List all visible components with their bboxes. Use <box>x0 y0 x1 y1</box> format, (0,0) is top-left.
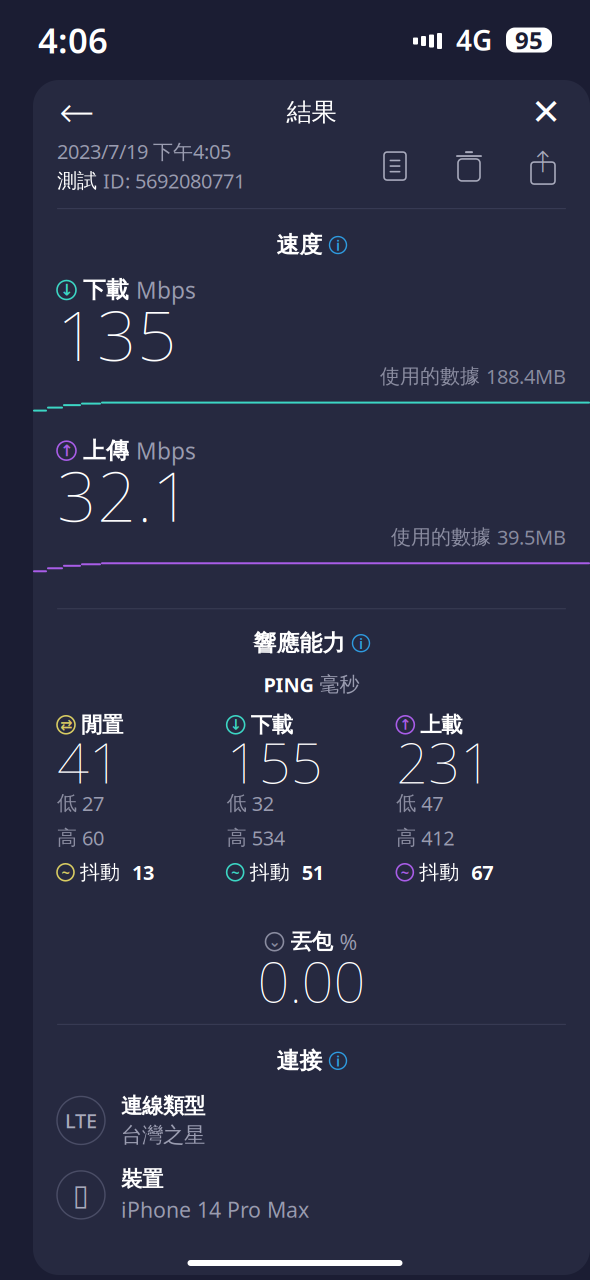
staticText: 32.1 <box>57 449 192 541</box>
button[interactable]: Delete <box>446 143 492 189</box>
button[interactable]: Close <box>524 90 568 134</box>
staticText: 27 <box>82 790 104 816</box>
staticText: 連接 <box>276 1047 322 1075</box>
staticText: ↑ <box>399 716 411 733</box>
staticText: 上載 <box>420 712 462 738</box>
staticText: 高 <box>57 825 77 850</box>
staticText: 速度 <box>276 231 322 259</box>
staticText: ↓ <box>60 281 73 299</box>
button[interactable]: Back <box>55 90 99 134</box>
staticText: ✕ <box>531 92 561 132</box>
staticText: ~ <box>61 862 69 882</box>
staticText: 高 <box>227 825 247 850</box>
staticText: 閒置 <box>81 712 123 738</box>
button[interactable]: Details <box>372 143 418 189</box>
staticText: 412 <box>421 824 454 851</box>
staticText: 4:06 <box>38 17 108 63</box>
staticText: 抖動 <box>419 860 465 885</box>
staticText: Mbps <box>136 436 196 466</box>
staticText: 231 <box>396 725 492 799</box>
staticText: ⇄ <box>60 716 72 733</box>
staticText: 60 <box>82 824 104 851</box>
staticText: 0.00 <box>257 944 365 1018</box>
staticText: 534 <box>252 824 285 851</box>
staticText: 135 <box>57 288 177 380</box>
staticText: 響應能力 <box>253 629 345 657</box>
staticText: ▯ <box>73 1178 89 1212</box>
staticText: 4G <box>456 21 492 59</box>
staticText: LTE <box>65 1107 97 1134</box>
staticText: iPhone 14 Pro Max <box>121 1195 309 1224</box>
staticText: 低 <box>396 791 416 815</box>
staticText: 32 <box>252 790 274 816</box>
staticText: ID: 5692080771 <box>103 168 245 194</box>
staticText: 丟包 <box>290 929 332 955</box>
staticText: ⌄ <box>268 933 280 950</box>
staticText: 測試 <box>57 169 103 193</box>
staticText: PING <box>263 671 313 698</box>
staticText: 13 <box>132 859 154 886</box>
staticText: 高 <box>396 825 416 850</box>
staticText: ↑ <box>530 145 555 179</box>
staticText: % <box>339 928 357 956</box>
staticText: 上傳 <box>83 437 129 465</box>
staticText: 39.5MB <box>497 524 566 550</box>
staticText: 下載 <box>83 276 129 304</box>
staticText: 188.4MB <box>486 363 566 390</box>
staticText: 41 <box>57 725 121 799</box>
staticText: 47 <box>421 790 443 816</box>
staticText: 155 <box>227 725 323 799</box>
staticText: 使用的數據 <box>380 364 486 389</box>
staticText: i <box>336 1051 340 1071</box>
staticText: ~ <box>231 862 239 882</box>
staticText: 51 <box>302 859 324 886</box>
staticText: 下載 <box>251 712 293 738</box>
staticText: ~ <box>401 862 409 882</box>
staticText: 67 <box>471 859 493 886</box>
staticText: 抖動 <box>80 860 126 885</box>
staticText: 低 <box>227 791 247 815</box>
staticText: 使用的數據 <box>391 525 497 549</box>
staticText: 連線類型 <box>121 1093 205 1119</box>
staticText: i <box>359 633 363 653</box>
staticText: ← <box>59 88 95 136</box>
staticText: 抖動 <box>250 860 296 885</box>
staticText: i <box>336 235 340 255</box>
staticText: 裝置 <box>121 1166 163 1192</box>
button[interactable]: Share <box>520 143 566 189</box>
staticText: 95 <box>515 24 543 56</box>
staticText: 結果 <box>286 96 336 127</box>
staticText: ↑ <box>60 442 73 460</box>
staticText: 毫秒 <box>319 672 359 697</box>
staticText: ↓ <box>230 716 242 733</box>
staticText: 2023/7/19 下午4:05 <box>57 138 231 165</box>
staticText: Mbps <box>136 275 196 305</box>
staticText: 低 <box>57 791 77 815</box>
button[interactable]: LTE <box>57 1093 566 1148</box>
button[interactable]: ▯ <box>57 1166 566 1224</box>
staticText: 台灣之星 <box>121 1122 205 1148</box>
